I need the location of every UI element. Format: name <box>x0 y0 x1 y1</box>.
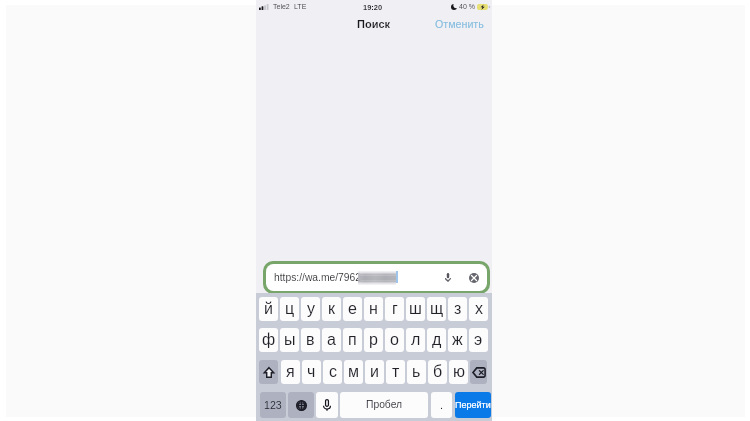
button[interactable]: б <box>428 360 447 384</box>
button[interactable]: е <box>343 297 362 321</box>
staticText: м <box>348 363 359 381</box>
staticText: р <box>369 331 378 349</box>
button[interactable]: л <box>406 328 425 352</box>
staticText: ж <box>452 331 463 349</box>
button[interactable]: в <box>301 328 320 352</box>
staticText: й <box>264 300 273 318</box>
button[interactable]: ц <box>280 297 299 321</box>
button[interactable]: Clear text <box>467 271 480 284</box>
staticText: 19:20 <box>363 3 383 11</box>
button[interactable]: Backspace <box>470 360 487 384</box>
staticText: ь <box>412 363 421 381</box>
staticText: у <box>307 300 315 318</box>
staticText: 123 <box>264 399 282 411</box>
button[interactable]: ф <box>259 328 278 352</box>
button[interactable]: . <box>431 392 452 418</box>
staticText: к <box>328 300 335 318</box>
staticText: https://wa.me/7962 <box>274 272 362 284</box>
button[interactable]: ю <box>449 360 468 384</box>
staticText: Поиск <box>357 18 391 30</box>
button[interactable]: Switch keyboard language <box>288 392 314 418</box>
button[interactable]: ы <box>280 328 299 352</box>
button[interactable]: у <box>301 297 320 321</box>
staticText: ч <box>307 363 316 381</box>
button[interactable]: а <box>322 328 341 352</box>
button[interactable]: т <box>386 360 405 384</box>
button[interactable]: р <box>364 328 383 352</box>
staticText: ц <box>285 300 295 318</box>
staticText: е <box>348 300 357 318</box>
button[interactable]: щ <box>427 297 446 321</box>
staticText: 40 % <box>459 3 475 11</box>
staticText: л <box>411 331 421 349</box>
staticText: п <box>348 331 357 349</box>
staticText: Tele2 <box>273 3 290 11</box>
button[interactable]: н <box>364 297 383 321</box>
staticText: ю <box>453 363 465 381</box>
staticText: щ <box>430 300 444 318</box>
button[interactable]: с <box>323 360 342 384</box>
staticText: д <box>432 331 442 349</box>
button[interactable]: https://wa.me/7962 <box>266 264 487 291</box>
staticText: ы <box>284 331 296 349</box>
button[interactable]: ж <box>448 328 467 352</box>
button[interactable]: ш <box>406 297 425 321</box>
staticText: б <box>433 363 443 381</box>
button[interactable]: м <box>344 360 363 384</box>
staticText: а <box>327 331 336 349</box>
staticText: т <box>392 363 400 381</box>
staticText: и <box>370 363 379 381</box>
button[interactable]: д <box>427 328 446 352</box>
staticText: н <box>369 300 378 318</box>
button[interactable]: к <box>322 297 341 321</box>
button[interactable]: Перейти <box>455 392 491 418</box>
button[interactable]: Пробел <box>340 392 428 418</box>
button[interactable]: х <box>469 297 488 321</box>
button[interactable]: п <box>343 328 362 352</box>
staticText: LTE <box>294 3 307 11</box>
button[interactable]: и <box>365 360 384 384</box>
button[interactable]: э <box>469 328 488 352</box>
staticText: в <box>306 331 315 349</box>
staticText: з <box>454 300 462 318</box>
staticText: ш <box>409 300 422 318</box>
button[interactable]: ч <box>302 360 321 384</box>
button[interactable]: о <box>385 328 404 352</box>
staticText: . <box>440 399 444 411</box>
staticText: х <box>475 300 483 318</box>
button[interactable]: Voice search <box>441 271 454 284</box>
button[interactable]: Shift <box>259 360 278 384</box>
staticText: о <box>390 331 399 349</box>
staticText: ф <box>262 331 276 349</box>
staticText: Отменить <box>435 18 484 30</box>
staticText: Пробел <box>366 399 403 411</box>
button[interactable]: Dictate <box>316 392 338 418</box>
button[interactable]: й <box>259 297 278 321</box>
staticText: э <box>474 331 483 349</box>
button[interactable]: я <box>281 360 300 384</box>
button[interactable]: Отменить <box>427 14 492 34</box>
button[interactable]: 123 <box>260 392 286 418</box>
staticText: Перейти <box>455 400 491 410</box>
staticText: г <box>392 300 398 318</box>
staticText: я <box>286 363 295 381</box>
button[interactable]: г <box>385 297 404 321</box>
button[interactable]: ь <box>407 360 426 384</box>
staticText: с <box>329 363 337 381</box>
button[interactable]: з <box>448 297 467 321</box>
